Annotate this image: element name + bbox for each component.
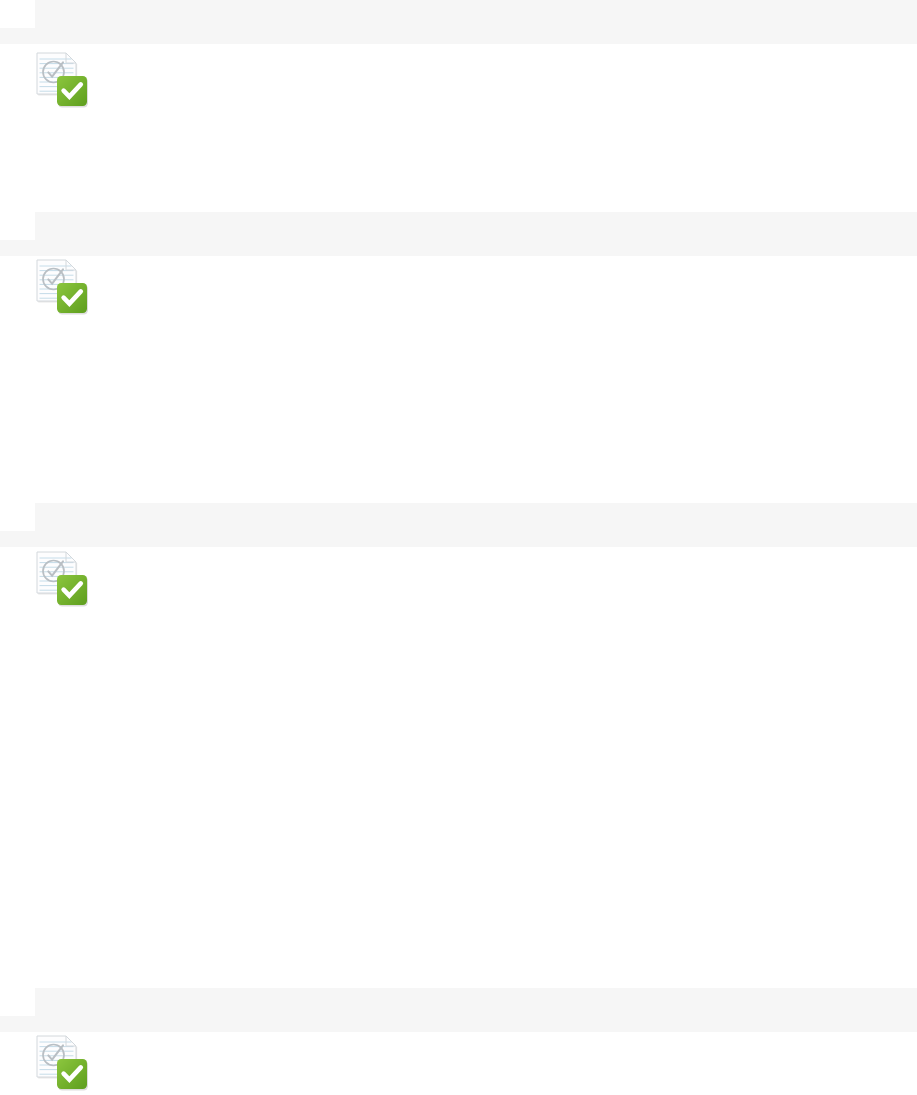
- button[interactable]: Completed document: [36, 260, 88, 312]
- button[interactable]: Completed document: [0, 988, 917, 1087]
- button[interactable]: Completed document: [36, 552, 88, 604]
- button[interactable]: Completed document: [0, 503, 917, 988]
- button[interactable]: Completed document: [36, 1036, 88, 1088]
- button[interactable]: Completed document: [0, 212, 917, 503]
- button[interactable]: Completed document: [36, 53, 88, 105]
- button[interactable]: Completed document: [0, 0, 917, 212]
